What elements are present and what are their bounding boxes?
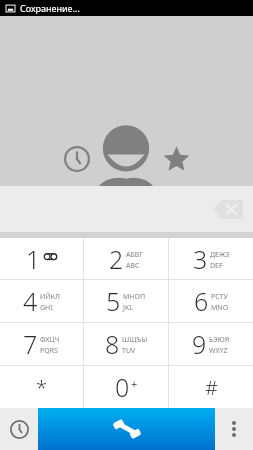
staticText: PQRS xyxy=(40,346,58,356)
button[interactable]: 7 xyxy=(0,323,83,365)
staticText: АБВГ xyxy=(126,250,143,260)
staticText: ДЕЖЗ xyxy=(210,250,230,260)
button[interactable]: Contacts xyxy=(97,122,155,188)
button[interactable]: Recent calls xyxy=(58,140,96,178)
staticText: 4 xyxy=(23,284,38,318)
staticText: JKL xyxy=(123,303,133,313)
button[interactable]: 9 xyxy=(169,323,253,365)
button[interactable]: 4 xyxy=(0,280,83,322)
button[interactable]: 5 xyxy=(84,280,168,322)
staticText: TUV xyxy=(122,346,136,356)
staticText: Сохранение... xyxy=(20,2,80,14)
staticText: 5 xyxy=(106,284,121,318)
staticText: 3 xyxy=(193,242,208,276)
button[interactable]: Call xyxy=(38,408,215,450)
staticText: DEF xyxy=(210,261,223,271)
staticText: 0 xyxy=(115,370,130,404)
button[interactable]: * xyxy=(0,366,83,408)
staticText: 2 xyxy=(109,242,124,276)
staticText: MNO xyxy=(211,303,229,313)
staticText: МНОП xyxy=(123,292,146,302)
button[interactable]: Backspace xyxy=(211,196,245,222)
button[interactable]: 3 xyxy=(169,238,253,279)
button[interactable]: More options xyxy=(215,408,253,450)
staticText: * xyxy=(36,374,48,401)
staticText: ИЙКЛ xyxy=(40,292,60,302)
button[interactable]: 8 xyxy=(84,323,168,365)
button[interactable]: 6 xyxy=(169,280,253,322)
staticText: # xyxy=(205,374,218,401)
staticText: WXYZ xyxy=(209,346,228,356)
staticText: ФХЦЧ xyxy=(40,335,60,345)
staticText: 1 xyxy=(26,242,41,276)
staticText: 8 xyxy=(105,327,120,361)
button[interactable]: Call log xyxy=(0,408,38,450)
staticText: GHI xyxy=(40,303,53,313)
button[interactable]: # xyxy=(169,366,253,408)
staticText: 7 xyxy=(23,327,38,361)
staticText: ABC xyxy=(126,261,140,271)
staticText: 9 xyxy=(192,327,207,361)
button[interactable]: Favourites xyxy=(157,140,195,178)
staticText: РСТУ xyxy=(211,292,228,302)
staticText: + xyxy=(131,376,138,391)
button[interactable]: 0 xyxy=(84,366,168,408)
staticText: 6 xyxy=(194,284,209,318)
staticText: ШЩЪЫ xyxy=(122,335,148,345)
button[interactable]: 2 xyxy=(84,238,168,279)
button[interactable]: 1 xyxy=(0,238,83,279)
staticText: ЬЭЮЯ xyxy=(209,335,230,345)
